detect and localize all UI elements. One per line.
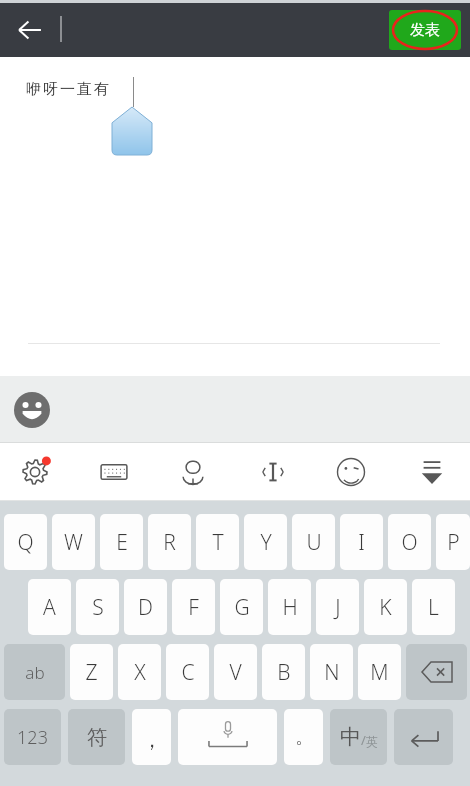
button[interactable]: Backspace xyxy=(406,644,467,700)
staticText: W xyxy=(64,528,83,557)
button[interactable]: Emoticons xyxy=(327,448,375,496)
staticText: I xyxy=(358,528,365,557)
staticText: U xyxy=(306,528,322,557)
button[interactable]: P xyxy=(436,514,470,570)
button[interactable]: O xyxy=(388,514,431,570)
staticText: 符 xyxy=(87,725,107,750)
button[interactable]: 123 xyxy=(4,709,61,765)
button[interactable]: Move cursor xyxy=(249,448,297,496)
staticText: V xyxy=(229,658,242,687)
staticText: D xyxy=(138,593,153,622)
staticText: Z xyxy=(85,658,98,687)
button[interactable]: Q xyxy=(4,514,47,570)
staticText: P xyxy=(447,528,460,557)
button[interactable]: Space xyxy=(178,709,277,765)
button[interactable]: E xyxy=(100,514,143,570)
staticText: / xyxy=(361,731,366,749)
button[interactable]: D xyxy=(124,579,167,635)
staticText: Q xyxy=(17,528,34,557)
staticText: J xyxy=(335,593,341,622)
button[interactable]: M xyxy=(358,644,401,700)
staticText: ， xyxy=(142,728,162,753)
staticText: O xyxy=(401,528,418,557)
button[interactable]: Settings xyxy=(11,448,59,496)
staticText: C xyxy=(181,658,195,687)
staticText: K xyxy=(379,593,392,622)
staticText: 咿呀一直有 xyxy=(25,80,110,99)
button[interactable]: ， xyxy=(132,709,171,765)
staticText: G xyxy=(234,593,250,622)
staticText: F xyxy=(188,593,199,622)
staticText: S xyxy=(92,593,104,622)
button[interactable]: A xyxy=(28,579,71,635)
staticText: B xyxy=(277,658,291,687)
button[interactable]: K xyxy=(364,579,407,635)
button[interactable]: 发表 xyxy=(389,10,461,50)
staticText: T xyxy=(212,528,224,557)
button[interactable]: Enter xyxy=(394,709,453,765)
button[interactable]: R xyxy=(148,514,191,570)
button[interactable]: N xyxy=(310,644,353,700)
button[interactable]: W xyxy=(52,514,95,570)
button[interactable]: S xyxy=(76,579,119,635)
staticText: ab xyxy=(25,661,45,684)
button[interactable]: Z xyxy=(70,644,113,700)
button[interactable]: H xyxy=(268,579,311,635)
staticText: 中 xyxy=(340,724,361,750)
staticText: A xyxy=(43,593,56,622)
button[interactable]: U xyxy=(292,514,335,570)
staticText: M xyxy=(370,658,389,687)
staticText: Y xyxy=(260,528,272,557)
button[interactable]: Hide keyboard xyxy=(408,448,456,496)
button[interactable]: Emoji xyxy=(8,386,56,434)
staticText: N xyxy=(324,658,340,687)
staticText: 英 xyxy=(366,734,378,749)
staticText: 。 xyxy=(295,726,313,749)
staticText: H xyxy=(282,593,298,622)
staticText: 123 xyxy=(17,725,48,750)
staticText: R xyxy=(163,528,176,557)
button[interactable]: J xyxy=(316,579,359,635)
button[interactable]: Back xyxy=(6,6,54,54)
button[interactable]: B xyxy=(262,644,305,700)
button[interactable]: 。 xyxy=(284,709,323,765)
button[interactable]: 符 xyxy=(68,709,125,765)
button[interactable]: Voice input xyxy=(169,448,217,496)
button[interactable]: I xyxy=(340,514,383,570)
staticText: E xyxy=(116,528,128,557)
button[interactable]: X xyxy=(118,644,161,700)
button[interactable]: C xyxy=(166,644,209,700)
staticText: 发表 xyxy=(410,21,440,40)
button[interactable]: L xyxy=(412,579,455,635)
button[interactable]: F xyxy=(172,579,215,635)
button[interactable]: Keyboard layout xyxy=(90,448,138,496)
button[interactable]: T xyxy=(196,514,239,570)
button[interactable]: Text cursor handle xyxy=(112,107,152,155)
button[interactable]: G xyxy=(220,579,263,635)
staticText: L xyxy=(428,593,439,622)
button[interactable]: ab xyxy=(4,644,65,700)
button[interactable]: 中/英 xyxy=(330,709,387,765)
button[interactable]: Y xyxy=(244,514,287,570)
staticText: X xyxy=(134,658,146,687)
button[interactable]: V xyxy=(214,644,257,700)
